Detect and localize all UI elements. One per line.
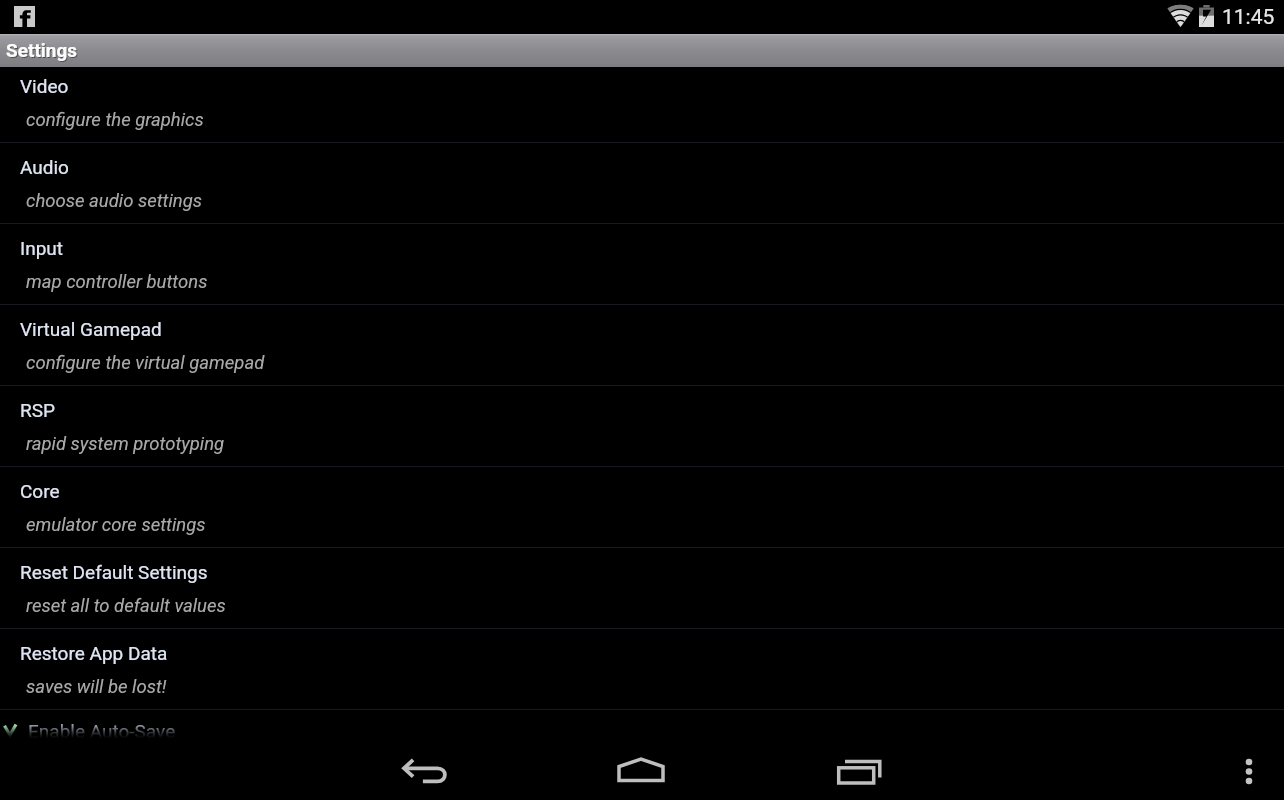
staticText: reset all to default values <box>26 595 226 617</box>
staticText: RSP <box>20 399 55 421</box>
button[interactable]: Recent apps <box>826 745 890 800</box>
staticText: configure the virtual gamepad <box>26 352 265 374</box>
staticText: Audio <box>20 156 69 178</box>
button[interactable]: Virtual Gamepad <box>0 305 1284 386</box>
staticText: Restore App Data <box>20 642 168 664</box>
button[interactable]: Reset Default Settings <box>0 548 1284 629</box>
staticText: map controller buttons <box>26 271 208 293</box>
staticText: Reset Default Settings <box>20 561 208 583</box>
staticText: saves will be lost! <box>26 676 167 698</box>
staticText: Enable Auto-Save <box>28 720 176 740</box>
button[interactable]: RSP <box>0 386 1284 467</box>
other: Battery charging <box>1199 5 1214 27</box>
staticText: Settings <box>6 39 78 61</box>
other: Facebook notification <box>14 6 35 27</box>
staticText: rapid system prototyping <box>26 433 225 455</box>
button[interactable]: Video <box>0 67 1284 143</box>
button[interactable]: Home <box>609 745 673 800</box>
button[interactable]: Restore App Data <box>0 629 1284 710</box>
staticText: Virtual Gamepad <box>20 318 162 340</box>
button[interactable]: Input <box>0 224 1284 305</box>
button[interactable]: Enable Auto-Save <box>0 710 1284 735</box>
staticText: configure the graphics <box>26 109 204 131</box>
staticText: Video <box>20 75 69 97</box>
staticText: Input <box>20 237 64 259</box>
button[interactable]: More options <box>1233 748 1265 780</box>
button[interactable]: Audio <box>0 143 1284 224</box>
other: Wi-Fi <box>1167 6 1194 27</box>
staticText: Settings <box>7 40 79 62</box>
staticText: Core <box>20 480 60 502</box>
staticText: emulator core settings <box>26 514 206 536</box>
button[interactable]: Core <box>0 467 1284 548</box>
button[interactable]: Back <box>393 745 457 800</box>
staticText: 11:45 <box>1222 5 1275 30</box>
staticText: choose audio settings <box>26 190 203 212</box>
